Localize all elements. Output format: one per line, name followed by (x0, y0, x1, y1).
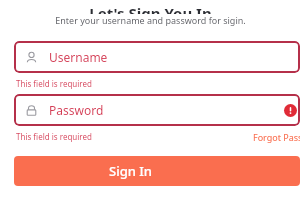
button[interactable]: Forgot Password? (253, 131, 300, 143)
staticText: Sign In (109, 162, 153, 180)
staticText: Let's Sign You In (89, 3, 212, 14)
button[interactable]: Sign In (14, 156, 300, 186)
staticText: Password (49, 102, 104, 118)
staticText: This field is required (16, 78, 92, 89)
staticText: Enter your username and password for sig… (55, 14, 246, 26)
button[interactable]: Password (14, 94, 300, 126)
staticText: This field is required (16, 131, 92, 142)
staticText: Username (49, 49, 108, 65)
other: Error (280, 100, 300, 120)
button[interactable]: Username (14, 41, 300, 73)
